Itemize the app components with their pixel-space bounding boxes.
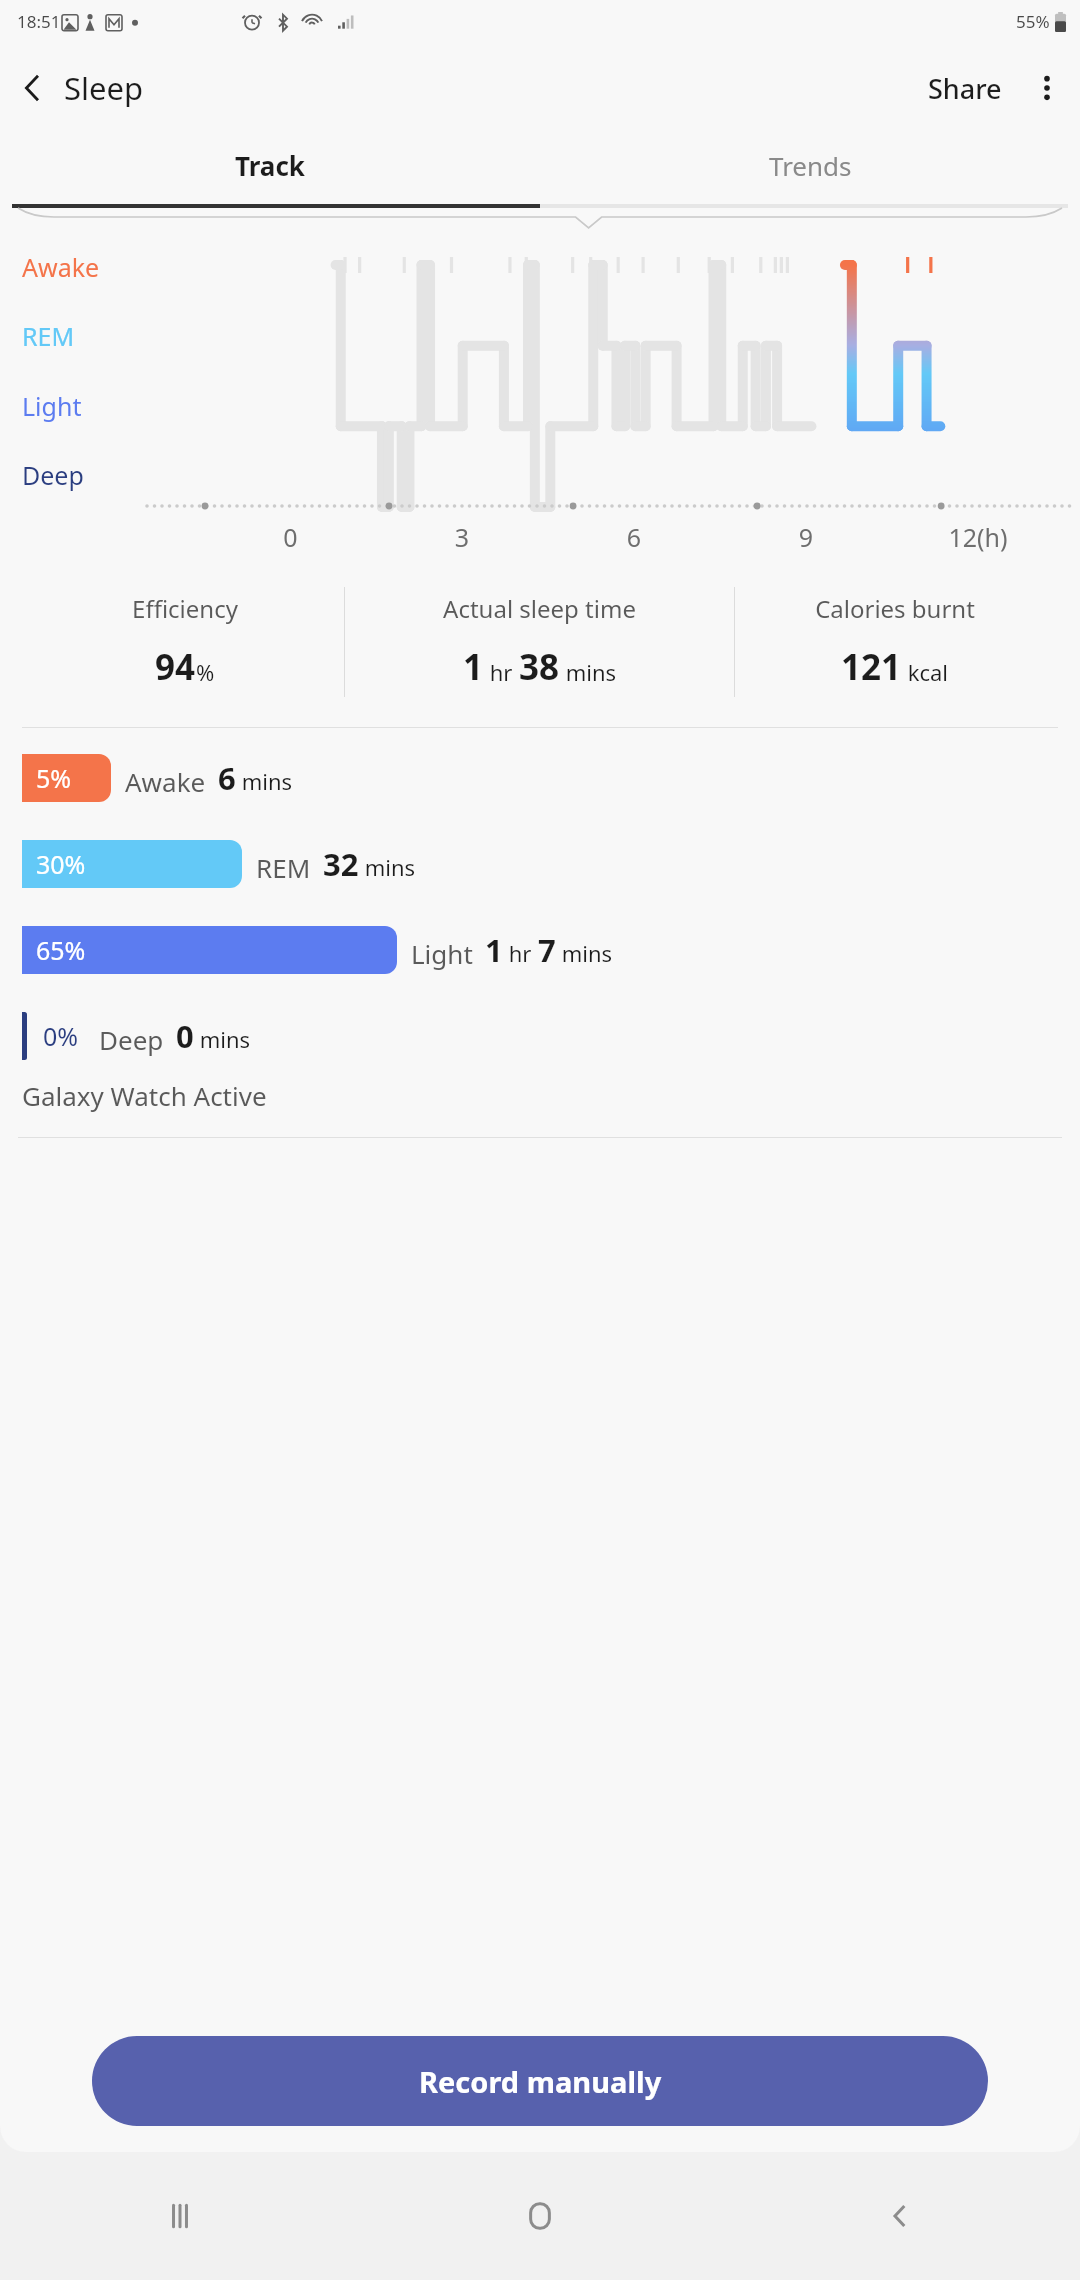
- staticText: hr: [484, 657, 519, 687]
- staticText: REM: [22, 319, 75, 353]
- staticText: 121: [841, 643, 902, 691]
- staticText: 30%: [36, 847, 86, 881]
- button[interactable]: Back: [0, 56, 64, 120]
- staticText: mins: [359, 852, 416, 882]
- staticText: 65%: [36, 933, 86, 967]
- button[interactable]: Back: [720, 2152, 1080, 2280]
- staticText: Record manually: [419, 2062, 662, 2101]
- staticText: mins: [236, 766, 293, 796]
- button[interactable]: Record manually: [92, 2036, 988, 2126]
- staticText: Share: [928, 70, 1002, 107]
- staticText: 9: [720, 520, 892, 554]
- staticText: Deep: [22, 458, 84, 492]
- staticText: Galaxy Watch Active: [22, 1078, 267, 1113]
- staticText: 18:51: [17, 10, 61, 33]
- staticText: 6: [218, 757, 236, 799]
- staticText: Efficiency: [132, 592, 238, 625]
- button[interactable]: Track: [0, 134, 540, 196]
- staticText: Calories burnt: [815, 592, 975, 625]
- button[interactable]: More options: [1014, 55, 1080, 121]
- staticText: 3: [376, 520, 548, 554]
- button[interactable]: 0%: [0, 1012, 1080, 1060]
- button[interactable]: Share: [916, 56, 1014, 121]
- staticText: 38: [519, 643, 560, 691]
- button[interactable]: Calories burnt: [735, 584, 1054, 699]
- button[interactable]: Trends: [540, 134, 1080, 196]
- staticText: 5%: [36, 761, 72, 795]
- staticText: Deep: [99, 1022, 164, 1057]
- staticText: Awake: [125, 764, 206, 799]
- button[interactable]: 30%: [0, 840, 1080, 888]
- button[interactable]: Home: [360, 2152, 720, 2280]
- staticText: hr: [503, 938, 538, 968]
- staticText: Track: [235, 148, 305, 183]
- staticText: 1: [463, 643, 484, 691]
- staticText: mins: [556, 938, 613, 968]
- staticText: 94: [155, 643, 196, 691]
- staticText: Awake: [22, 250, 100, 284]
- staticText: Sleep: [64, 67, 144, 109]
- staticText: mins: [560, 657, 617, 687]
- button[interactable]: 65%: [0, 926, 1080, 974]
- staticText: %: [196, 657, 215, 687]
- button[interactable]: Recents: [0, 2152, 360, 2280]
- staticText: 0: [176, 1015, 194, 1057]
- staticText: REM: [256, 850, 311, 885]
- staticText: 55%: [1016, 10, 1050, 33]
- staticText: 7: [538, 929, 556, 971]
- staticText: Light: [22, 389, 82, 423]
- staticText: Trends: [769, 148, 852, 183]
- button[interactable]: Actual sleep time: [345, 584, 734, 699]
- staticText: 0: [205, 520, 376, 554]
- staticText: mins: [194, 1024, 251, 1054]
- button[interactable]: Efficiency: [26, 584, 344, 699]
- button[interactable]: 5%: [0, 754, 1080, 802]
- staticText: kcal: [902, 657, 949, 687]
- staticText: Light: [411, 936, 473, 971]
- staticText: 32: [323, 843, 359, 885]
- staticText: Actual sleep time: [443, 592, 636, 625]
- staticText: 0%: [43, 1019, 79, 1053]
- staticText: 1: [485, 929, 503, 971]
- staticText: 12(h): [892, 520, 1064, 554]
- staticText: 6: [548, 520, 720, 554]
